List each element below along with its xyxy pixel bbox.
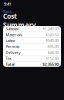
staticText: $112.40: [45, 56, 58, 61]
staticText: $540.00: [45, 38, 58, 43]
staticText: Labor: [5, 38, 15, 43]
staticText: Tax: [5, 56, 11, 61]
staticText: $1,240.00: [42, 26, 58, 31]
staticText: Cost Summary: [3, 12, 36, 29]
staticText: $2,355.90: [42, 61, 58, 67]
staticText: Permits: [5, 44, 19, 49]
staticText: Materials: [5, 32, 22, 37]
staticText: Subtotal: [5, 26, 18, 31]
staticText: $320.50: [45, 32, 58, 37]
staticText: Delivery: [5, 50, 20, 55]
button[interactable]: Back: [3, 9, 12, 14]
staticText: 9:41: [4, 1, 11, 7]
staticText: $48.00: [47, 50, 58, 55]
staticText: Back: [3, 9, 12, 14]
staticText: Total: [5, 61, 14, 67]
staticText: $95.00: [47, 44, 58, 49]
